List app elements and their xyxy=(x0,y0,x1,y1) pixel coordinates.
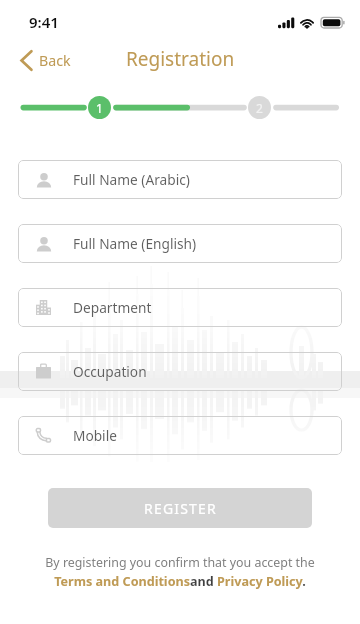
button[interactable]: Department xyxy=(18,288,342,327)
staticText: Back xyxy=(39,51,71,70)
button[interactable]: Occupation xyxy=(18,352,342,391)
staticText: 2 xyxy=(256,100,263,116)
button[interactable]: Step 2 xyxy=(248,96,271,119)
staticText: By registering you confirm that you acce… xyxy=(45,554,315,571)
button[interactable]: Full Name (English) xyxy=(18,224,342,263)
staticText: Registration xyxy=(126,46,235,72)
button[interactable]: Mobile xyxy=(18,416,342,455)
staticText: Occupation xyxy=(73,362,147,381)
staticText: Full Name (Arabic) xyxy=(73,170,190,189)
staticText: REGISTER xyxy=(144,499,217,518)
button[interactable]: Full Name (Arabic) xyxy=(18,160,342,199)
staticText: Mobile xyxy=(73,426,117,445)
staticText: 9:41 xyxy=(29,12,59,32)
button[interactable]: Back xyxy=(16,43,75,76)
staticText: Full Name (English) xyxy=(73,234,197,253)
button[interactable]: Terms and Conditionsand Privacy Policy. xyxy=(54,573,306,590)
button[interactable]: REGISTER xyxy=(48,488,312,528)
staticText: 1 xyxy=(96,100,103,116)
button[interactable]: Step 1 xyxy=(88,96,111,119)
staticText: Department xyxy=(73,298,152,317)
staticText: Terms and Conditionsand Privacy Policy. xyxy=(54,573,306,590)
